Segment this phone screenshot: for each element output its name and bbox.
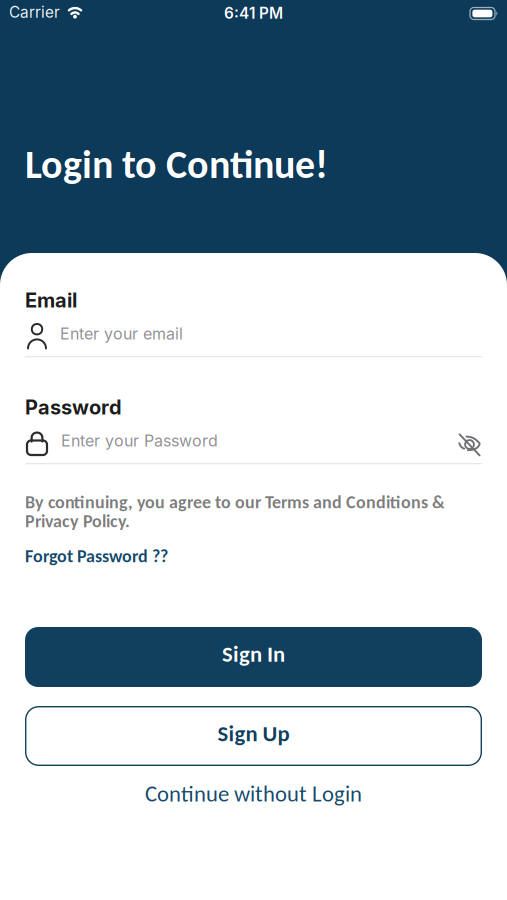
staticText: Forgot Password ?? [25,545,168,567]
staticText: Password [25,395,122,419]
button[interactable]: Sign In [25,627,482,687]
staticText: Enter your Password [61,431,218,450]
staticText: Sign In [222,640,285,668]
staticText: Sign Up [217,720,289,747]
staticText: Login to Continue! [25,140,328,189]
button[interactable]: Sign Up [25,706,482,766]
staticText: 6:41 PM [224,4,283,23]
button[interactable]: Continue without Login [145,780,362,808]
staticText: Continue without Login [145,780,362,808]
staticText: By continuing, you agree to our Terms an… [25,491,445,513]
button[interactable]: Show password [457,433,482,457]
staticText: Privacy Policy. [25,510,130,532]
button[interactable]: Forgot Password ?? [25,545,168,567]
staticText: Email [25,288,77,312]
staticText: Carrier [9,3,60,22]
staticText: Enter your email [60,324,183,343]
